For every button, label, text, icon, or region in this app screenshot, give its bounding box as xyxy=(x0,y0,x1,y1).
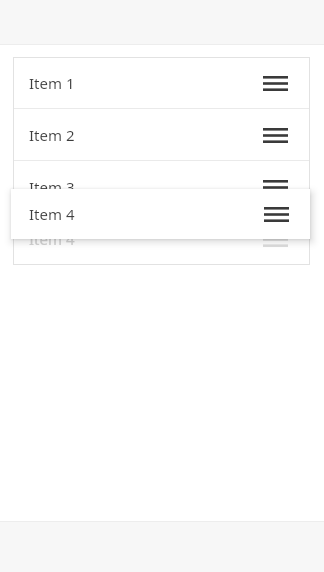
staticText: Item 2 xyxy=(29,125,75,145)
staticText: Item 3 xyxy=(29,177,75,197)
staticText: Item 4 xyxy=(29,204,75,224)
button[interactable]: Item 2 xyxy=(13,109,310,160)
button[interactable]: Drag handle xyxy=(262,177,288,197)
button[interactable]: Item 4 xyxy=(13,213,310,264)
button[interactable]: Item 4 xyxy=(11,189,310,239)
button[interactable]: Item 1 xyxy=(13,57,310,108)
button[interactable]: Drag handle xyxy=(262,229,288,249)
button[interactable]: Drag handle xyxy=(262,125,288,145)
staticText: Item 1 xyxy=(29,73,75,93)
button[interactable]: Drag handle xyxy=(262,73,288,93)
button[interactable]: Drag handle xyxy=(263,204,289,224)
staticText: Item 4 xyxy=(29,229,75,249)
button[interactable]: Item 3 xyxy=(13,161,310,212)
